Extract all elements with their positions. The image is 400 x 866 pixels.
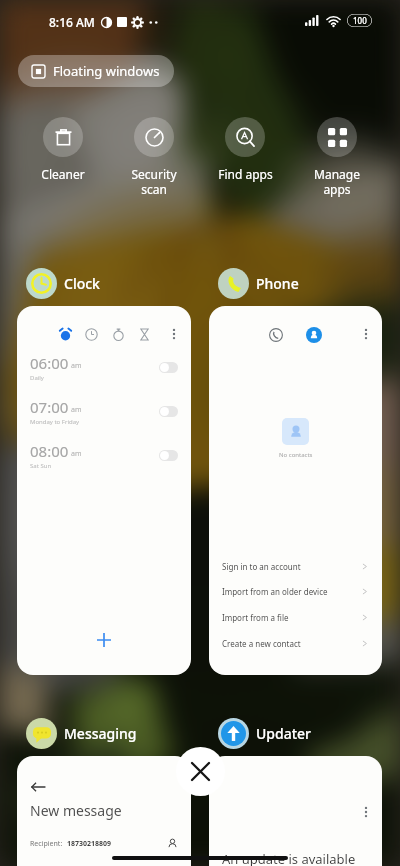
button[interactable]: More options <box>209 756 382 866</box>
button[interactable]: 06:00 <box>17 352 191 382</box>
button[interactable]: More options <box>358 804 374 820</box>
button[interactable]: Tab <box>134 324 154 344</box>
button[interactable]: Tab <box>17 306 191 675</box>
staticText: am <box>71 361 82 371</box>
staticText: Recipient: <box>30 839 63 849</box>
staticText: Updater <box>256 724 312 743</box>
button[interactable]: Sign in to an account <box>209 555 382 577</box>
button[interactable]: Import from a file <box>209 606 382 628</box>
button[interactable]: Tab <box>108 324 128 344</box>
staticText: am <box>71 405 82 415</box>
button[interactable]: Tab <box>55 324 75 344</box>
button[interactable]: Security scan <box>108 117 199 197</box>
staticText: Find apps <box>218 166 273 182</box>
staticText: Phone <box>256 274 299 293</box>
button[interactable]: Phone <box>218 268 299 299</box>
button[interactable]: Manage apps <box>291 117 383 197</box>
button[interactable]: Create a new contact <box>209 632 382 654</box>
staticText: Import from a file <box>222 612 289 623</box>
staticText: Floating windows <box>53 62 160 80</box>
button[interactable]: Back <box>25 774 51 800</box>
button[interactable]: Add alarm <box>91 627 117 653</box>
staticText: 07:00 <box>30 397 69 417</box>
button[interactable]: Messaging <box>26 718 137 749</box>
staticText: New message <box>30 801 122 820</box>
button[interactable]: Dialer <box>266 325 286 345</box>
staticText: Monday to Friday <box>30 418 80 426</box>
staticText: Import from an older device <box>222 586 328 597</box>
button[interactable]: 08:00 <box>17 440 191 470</box>
staticText: Manage apps <box>314 166 360 197</box>
staticText: An update is available <box>222 850 356 866</box>
staticText: 06:00 <box>30 353 69 373</box>
staticText: Sat Sun <box>30 462 52 470</box>
staticText: Messaging <box>64 724 137 743</box>
staticText: 8:16 AM <box>49 14 95 30</box>
button[interactable]: Contacts <box>304 325 324 345</box>
button[interactable]: 07:00 <box>17 396 191 426</box>
staticText: No contacts <box>279 451 313 459</box>
button[interactable]: More options <box>358 326 374 342</box>
staticText: Daily <box>30 374 44 382</box>
button[interactable]: Dialer <box>209 306 382 675</box>
button[interactable]: Cleaner <box>17 117 108 182</box>
button[interactable]: Back <box>17 756 191 866</box>
staticText: Sign in to an account <box>222 561 301 572</box>
button[interactable]: Floating windows <box>18 55 174 87</box>
staticText: Clock <box>64 274 100 293</box>
button[interactable]: Import from an older device <box>209 580 382 602</box>
staticText: 08:00 <box>30 441 69 461</box>
staticText: am <box>71 449 82 459</box>
staticText: Security scan <box>131 166 177 197</box>
button[interactable]: Find apps <box>199 117 291 182</box>
staticText: 100 <box>353 15 367 26</box>
button[interactable]: Close all apps <box>176 747 225 796</box>
staticText: 18730218809 <box>67 839 112 849</box>
button[interactable]: Tab <box>81 324 101 344</box>
staticText: Cleaner <box>41 166 85 182</box>
button[interactable]: Updater <box>218 718 312 749</box>
staticText: Create a new contact <box>222 638 301 649</box>
button[interactable]: Clock <box>26 268 100 299</box>
